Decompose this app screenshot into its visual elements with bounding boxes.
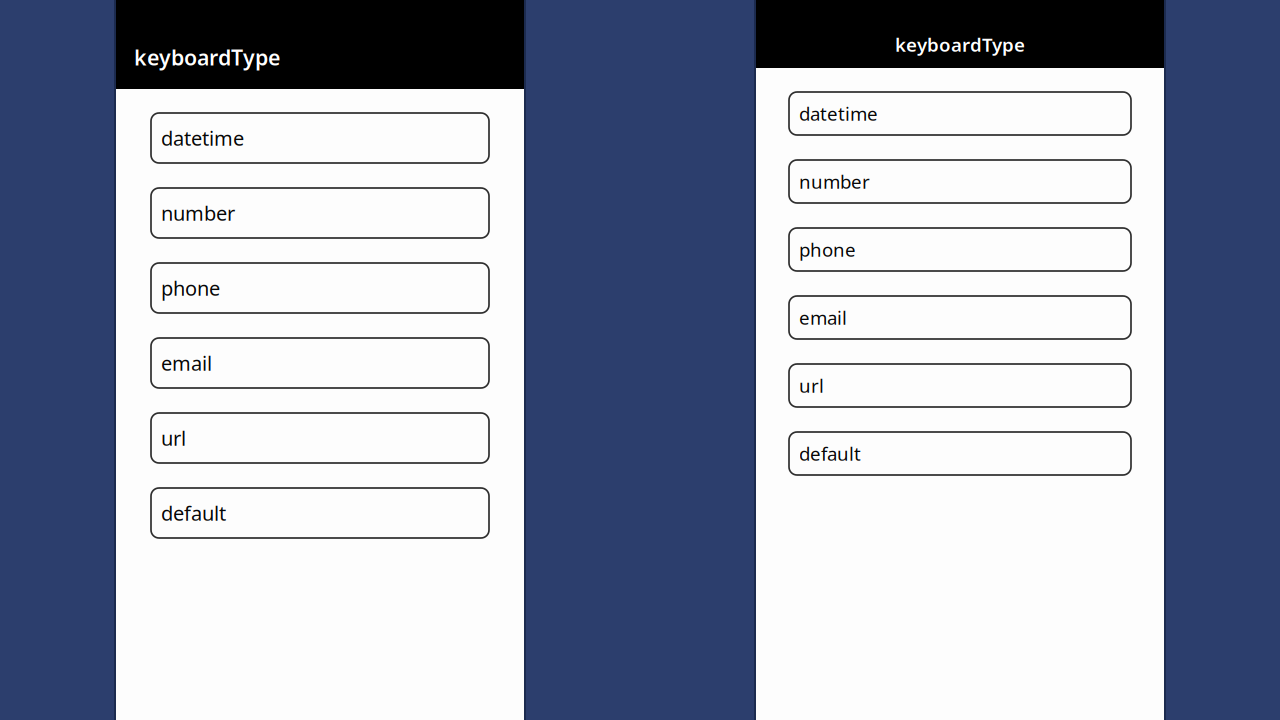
button[interactable]: keyboardType (756, 0, 1164, 68)
button[interactable]: number (151, 188, 489, 238)
button[interactable]: datetime (151, 113, 489, 163)
button[interactable]: number (789, 160, 1131, 203)
button[interactable]: keyboardType (116, 0, 524, 89)
staticText: phone (161, 275, 220, 301)
staticText: url (799, 373, 824, 398)
button[interactable]: url (789, 364, 1131, 407)
button[interactable]: default (151, 488, 489, 538)
button[interactable]: default (789, 432, 1131, 475)
staticText: phone (799, 237, 856, 262)
button[interactable]: url (151, 413, 489, 463)
staticText: keyboardType (895, 32, 1025, 57)
staticText: url (161, 425, 186, 451)
staticText: default (161, 500, 226, 526)
button[interactable]: email (789, 296, 1131, 339)
button[interactable]: email (151, 338, 489, 388)
button[interactable]: phone (789, 228, 1131, 271)
staticText: datetime (161, 125, 244, 151)
staticText: keyboardType (134, 43, 280, 71)
button[interactable]: datetime (789, 92, 1131, 135)
button[interactable]: phone (151, 263, 489, 313)
staticText: email (799, 305, 847, 330)
staticText: email (161, 350, 212, 376)
staticText: datetime (799, 101, 878, 126)
staticText: default (799, 441, 861, 466)
staticText: number (799, 169, 870, 194)
staticText: number (161, 200, 235, 226)
